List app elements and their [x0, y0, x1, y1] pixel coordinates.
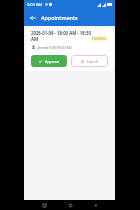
staticText: Cancel: [87, 59, 99, 64]
staticText: 2026-01-09 - 18:00 AM - 18:30 AM: [31, 30, 93, 42]
button[interactable]: Back: [90, 200, 100, 210]
button[interactable]: Recents: [39, 200, 49, 210]
button[interactable]: Back: [27, 12, 38, 23]
staticText: Approve: [45, 59, 60, 64]
button[interactable]: Approve: [31, 55, 67, 67]
staticText: 9:03 AM: [27, 2, 43, 7]
staticText: ahmed (0367663136): [37, 45, 72, 50]
button[interactable]: 2026-01-09 - 18:00 AM - 18:30 AM: [26, 27, 113, 71]
button[interactable]: Home: [65, 200, 75, 210]
button[interactable]: Cancel: [71, 55, 108, 67]
staticText: Appointments: [41, 14, 78, 21]
staticText: PENDING: [92, 37, 106, 41]
